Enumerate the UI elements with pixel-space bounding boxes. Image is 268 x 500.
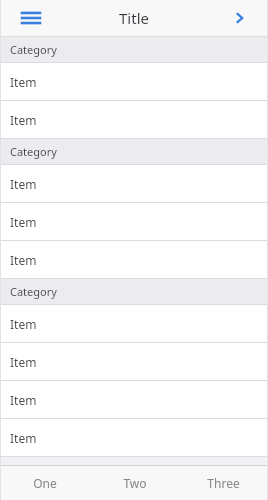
staticText: Category	[10, 42, 57, 57]
button[interactable]: Item	[0, 241, 268, 278]
button[interactable]: Item	[0, 63, 268, 100]
staticText: Three	[207, 475, 240, 491]
button[interactable]: Item	[0, 203, 268, 240]
staticText: Item	[10, 176, 37, 192]
button[interactable]: Two	[90, 466, 179, 500]
staticText: Item	[10, 430, 37, 446]
staticText: Item	[10, 392, 37, 408]
staticText: Item	[10, 214, 37, 230]
button[interactable]: Item	[0, 101, 268, 138]
button[interactable]: Item	[0, 419, 268, 456]
staticText: Category	[10, 284, 57, 299]
button[interactable]: One	[0, 466, 90, 500]
button[interactable]: Item	[0, 381, 268, 418]
staticText: Item	[10, 354, 37, 370]
button[interactable]: Forward	[228, 6, 252, 30]
staticText: Two	[123, 475, 147, 491]
staticText: One	[33, 475, 57, 491]
staticText: Item	[10, 316, 37, 332]
button[interactable]: Item	[0, 305, 268, 342]
button[interactable]: Menu	[18, 5, 44, 31]
staticText: Item	[10, 252, 37, 268]
staticText: Title	[119, 8, 149, 28]
staticText: Item	[10, 74, 37, 90]
button[interactable]: Item	[0, 343, 268, 380]
button[interactable]: Three	[179, 466, 268, 500]
staticText: Category	[10, 144, 57, 159]
button[interactable]: Item	[0, 165, 268, 202]
staticText: Item	[10, 112, 37, 128]
